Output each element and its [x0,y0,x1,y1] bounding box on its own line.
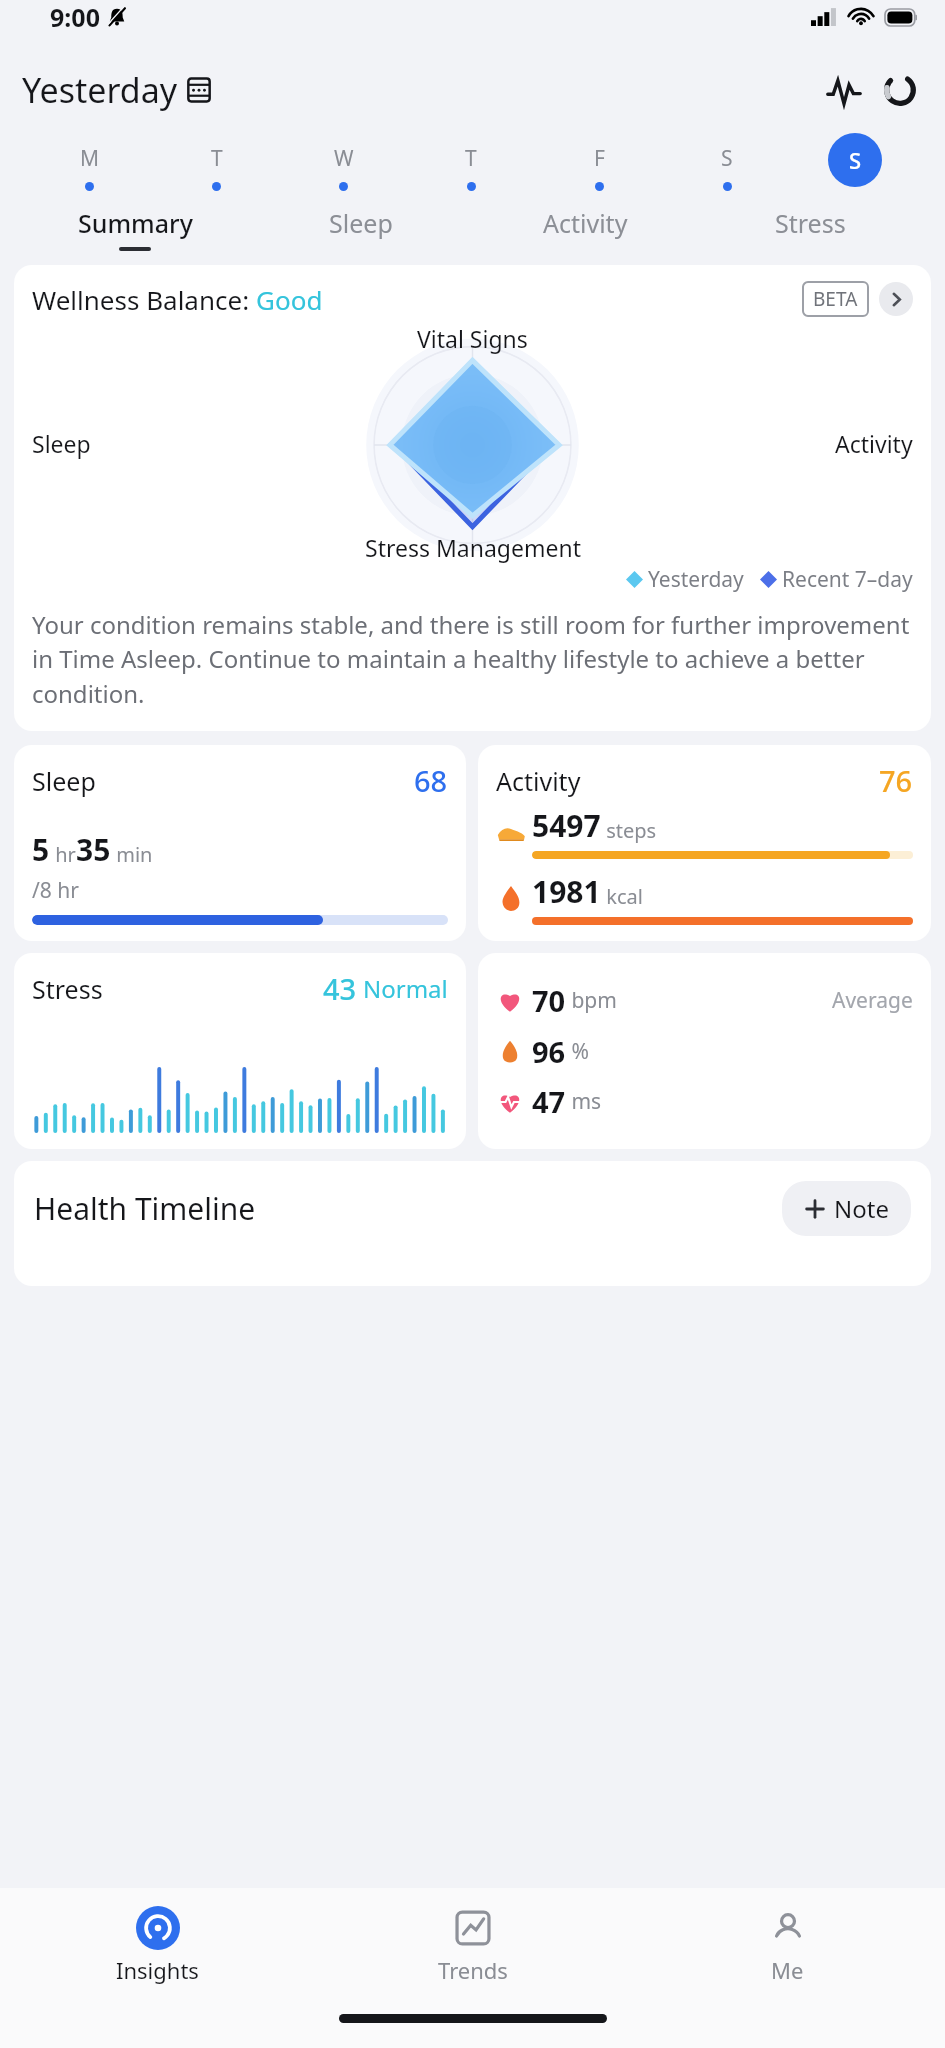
button[interactable]: Sleep [14,745,466,941]
button[interactable]: S [663,144,791,191]
button[interactable]: Summary [22,206,248,251]
staticText: bpm [566,986,617,1015]
staticText: 9:00 [50,0,100,34]
staticText: Summary [78,206,193,240]
button[interactable]: Insights [0,1888,315,2000]
staticText: S [721,144,733,173]
staticText: F [594,144,605,173]
button[interactable]: S [828,133,882,187]
staticText: 35 [76,829,111,870]
button[interactable]: Me [630,1888,945,2000]
staticText: Trends [438,1955,508,1985]
button[interactable]: Sync [877,67,923,113]
button[interactable]: Note [782,1181,911,1236]
staticText: Normal [363,972,448,1005]
staticText: Note [834,1192,889,1225]
staticText: Sleep [32,428,91,459]
staticText: Insights [116,1955,199,1985]
button[interactable]: BETA [802,281,869,317]
staticText: 43 [323,969,357,1008]
staticText: /8 hr [32,876,79,905]
button[interactable]: T [407,144,535,191]
button[interactable]: M [26,144,153,191]
button[interactable]: Stress [698,206,923,251]
staticText: Stress [775,206,846,240]
staticText: BETA [813,286,858,312]
staticText: Stress [32,972,103,1006]
button[interactable]: F [535,144,663,191]
staticText: M [80,144,100,173]
staticText: % [566,1037,589,1066]
staticText: 68 [414,761,448,800]
button[interactable]: Stress [14,953,466,1149]
button[interactable]: Health Timeline [14,1161,931,1286]
button[interactable]: Wellness Balance: [14,265,931,731]
staticText: Vital Signs [417,323,528,354]
staticText: T [211,144,223,173]
staticText: Me [771,1955,804,1985]
staticText: min [111,841,153,868]
staticText: Average [832,986,913,1015]
button[interactable]: Activity [478,745,931,941]
staticText: steps [601,817,657,844]
staticText: S [849,145,862,175]
button[interactable]: Trends [315,1888,630,2000]
staticText: Stress Management [365,532,581,563]
staticText: Your condition remains stable, and there… [32,608,913,711]
staticText: Health Timeline [34,1188,256,1229]
staticText: W [334,144,354,173]
staticText: Sleep [329,206,393,240]
button[interactable]: W [280,144,407,191]
staticText: 96 [532,1032,566,1071]
staticText: Good [256,282,323,317]
button[interactable]: 70 [478,953,931,1149]
staticText: 76 [879,761,913,800]
staticText: ms [566,1087,602,1116]
staticText: 47 [532,1082,566,1121]
staticText: Activity [496,764,581,798]
staticText: Activity [543,206,628,240]
button[interactable]: Activity [473,206,698,251]
staticText: 70 [532,981,566,1020]
staticText: Wellness Balance: [32,282,256,317]
button[interactable]: Yesterday [22,63,212,117]
staticText: 1981 [532,871,601,912]
button[interactable]: Heart rate waveform [821,67,867,113]
staticText: 5497 [532,805,601,846]
staticText: Yesterday [22,67,178,113]
staticText: Sleep [32,764,96,798]
button[interactable]: T [153,144,280,191]
staticText: Yesterday [648,565,744,594]
staticText: 5 [32,829,50,870]
staticText: kcal [601,883,643,910]
button[interactable]: Sleep [248,206,473,251]
staticText: Activity [835,428,913,459]
staticText: hr [50,841,76,868]
button[interactable]: Details [879,282,913,316]
staticText: T [465,144,477,173]
staticText: Recent 7–day [782,565,913,594]
